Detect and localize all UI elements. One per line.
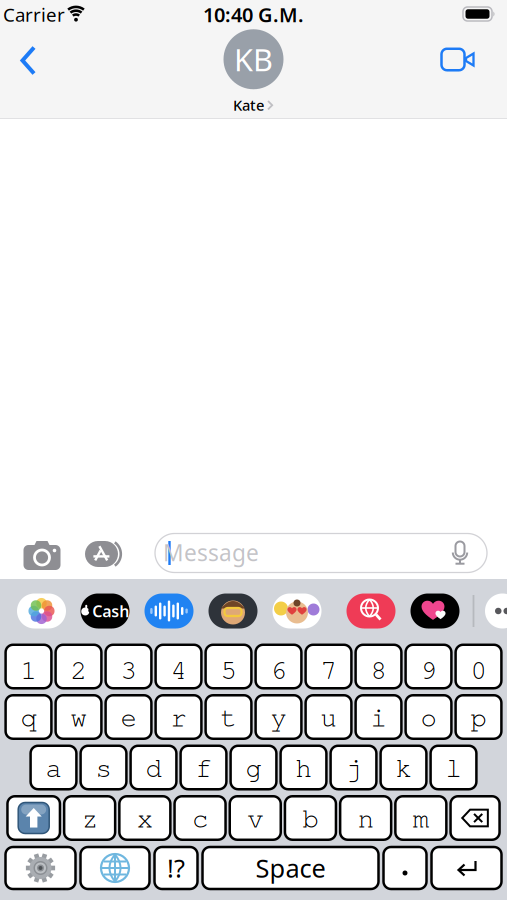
button[interactable]: 6 xyxy=(256,645,301,688)
staticText: q xyxy=(20,701,36,733)
button[interactable]: b xyxy=(285,796,336,840)
button[interactable]: p xyxy=(456,695,501,739)
button[interactable]: f xyxy=(181,746,226,789)
button[interactable]: w xyxy=(56,695,101,739)
button[interactable]: Memoji Stickers xyxy=(208,593,257,628)
button[interactable]: !? xyxy=(154,847,197,889)
button[interactable]: s xyxy=(81,746,126,789)
button[interactable]: Digital Touch xyxy=(410,593,459,628)
staticText: 10:40 G.M. xyxy=(203,1,304,28)
button[interactable]: x xyxy=(119,796,170,840)
staticText: 8 xyxy=(370,653,386,686)
button[interactable]: Audio xyxy=(144,593,193,628)
button[interactable]: n xyxy=(340,796,391,840)
staticText: o xyxy=(420,701,436,733)
staticText: t xyxy=(220,701,236,733)
button[interactable]: g xyxy=(231,746,276,789)
staticText: !? xyxy=(167,851,185,885)
button[interactable]: q xyxy=(6,695,51,739)
staticText: r xyxy=(170,701,186,733)
button[interactable]: v xyxy=(230,796,281,840)
staticText: KB xyxy=(234,39,273,80)
button[interactable]: Message text field xyxy=(155,533,487,572)
button[interactable]: 2 xyxy=(56,645,101,688)
staticText: 9 xyxy=(420,653,436,686)
button[interactable]: Back xyxy=(6,38,50,82)
staticText: u xyxy=(320,701,336,733)
button[interactable]: 5 xyxy=(206,645,251,688)
staticText: i xyxy=(370,701,386,733)
staticText: m xyxy=(413,802,429,834)
button[interactable]: k xyxy=(381,746,426,789)
staticText: z xyxy=(82,802,98,834)
staticText: b xyxy=(302,802,318,834)
button[interactable]: i xyxy=(356,695,401,739)
button[interactable]: 0 xyxy=(456,645,501,688)
staticText: g xyxy=(245,751,261,784)
button[interactable]: d xyxy=(131,746,176,789)
staticText: n xyxy=(358,802,374,834)
staticText: 7 xyxy=(320,653,336,686)
staticText: 0 xyxy=(470,653,486,686)
button[interactable]: 1 xyxy=(6,645,51,688)
staticText: Cash xyxy=(92,600,129,622)
staticText: 2 xyxy=(70,653,86,686)
button[interactable]: Delete xyxy=(450,796,499,840)
button[interactable]: 4 xyxy=(156,645,201,688)
staticText: k xyxy=(395,751,411,784)
staticText: w xyxy=(70,701,86,733)
staticText: Carrier xyxy=(3,2,65,27)
staticText: 5 xyxy=(220,653,236,686)
staticText: j xyxy=(345,751,361,784)
staticText: a xyxy=(45,751,61,784)
button[interactable]: m xyxy=(395,796,446,840)
button[interactable]: Return xyxy=(431,847,501,889)
staticText: 4 xyxy=(170,653,186,686)
staticText: Message xyxy=(163,537,259,567)
button[interactable]: e xyxy=(106,695,151,739)
button[interactable]: y xyxy=(256,695,301,739)
button[interactable]: a xyxy=(31,746,76,789)
button[interactable]: Apple Cash xyxy=(80,593,129,628)
button[interactable]: z xyxy=(64,796,115,840)
staticText: p xyxy=(470,701,486,733)
button[interactable]: Images xyxy=(346,593,395,628)
button[interactable]: Next keyboard xyxy=(80,847,149,889)
button[interactable]: 8 xyxy=(356,645,401,688)
staticText: 1 xyxy=(20,653,36,686)
button[interactable]: h xyxy=(281,746,326,789)
staticText: s xyxy=(95,751,111,784)
staticText: v xyxy=(247,802,263,834)
staticText: e xyxy=(120,701,136,733)
button[interactable]: iMessage apps xyxy=(85,541,126,567)
button[interactable]: Kate, details xyxy=(223,29,283,115)
button[interactable]: l xyxy=(431,746,476,789)
button[interactable]: t xyxy=(206,695,251,739)
button[interactable]: Photos xyxy=(17,593,66,628)
staticText: f xyxy=(195,751,211,784)
button[interactable]: 9 xyxy=(406,645,451,688)
button[interactable]: Space xyxy=(202,847,378,889)
button[interactable]: More apps xyxy=(485,593,507,628)
staticText: l xyxy=(445,751,461,784)
staticText: c xyxy=(192,802,208,834)
button[interactable]: Memoji xyxy=(272,593,321,628)
button[interactable]: j xyxy=(331,746,376,789)
staticText: Space xyxy=(255,851,325,885)
button[interactable]: c xyxy=(175,796,226,840)
staticText: d xyxy=(145,751,161,784)
button[interactable]: FaceTime xyxy=(437,43,481,75)
button[interactable]: . xyxy=(383,847,426,889)
button[interactable]: o xyxy=(406,695,451,739)
button[interactable]: Camera xyxy=(23,540,60,570)
button[interactable]: u xyxy=(306,695,351,739)
button[interactable]: r xyxy=(156,695,201,739)
button[interactable]: 3 xyxy=(106,645,151,688)
button[interactable]: 7 xyxy=(306,645,351,688)
staticText: y xyxy=(270,701,286,733)
staticText: x xyxy=(137,802,153,834)
button[interactable]: Shift xyxy=(7,796,60,840)
staticText: Kate xyxy=(233,95,264,115)
button[interactable]: Settings xyxy=(5,847,75,889)
staticText: 6 xyxy=(270,653,286,686)
